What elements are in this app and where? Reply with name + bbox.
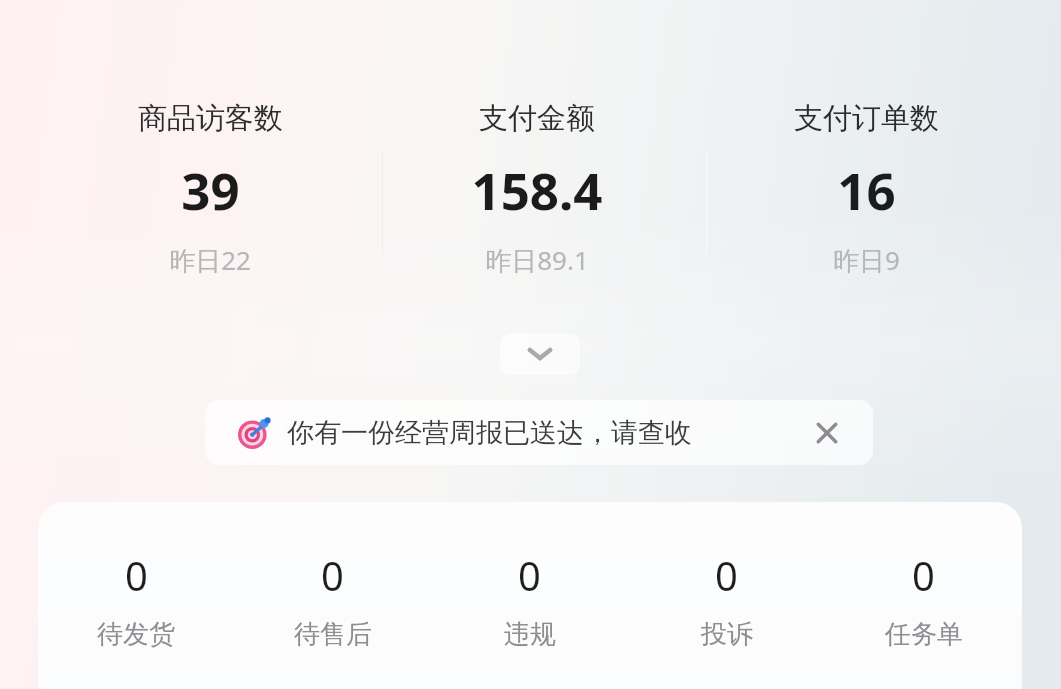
staticText: 你有一份经营周报已送达，请查收 xyxy=(287,416,692,450)
button[interactable]: 支付金额 xyxy=(387,100,687,278)
button[interactable]: 关闭 xyxy=(807,413,847,453)
button[interactable]: 你有一份经营周报已送达，请查收 xyxy=(205,400,873,465)
button[interactable]: 0 xyxy=(234,542,431,657)
staticText: 0 xyxy=(715,548,738,602)
staticText: 16 xyxy=(837,155,896,224)
staticText: 0 xyxy=(321,548,344,602)
staticText: 0 xyxy=(125,548,148,602)
button[interactable]: 0 xyxy=(628,542,825,657)
staticText: 昨日22 xyxy=(169,242,251,278)
staticText: 0 xyxy=(912,548,935,602)
staticText: 158.4 xyxy=(471,155,603,224)
staticText: 0 xyxy=(518,548,541,602)
staticText: 违规 xyxy=(504,618,556,651)
staticText: 待发货 xyxy=(97,618,175,651)
staticText: 昨日9 xyxy=(833,242,900,278)
staticText: 商品访客数 xyxy=(138,100,283,137)
button[interactable]: 0 xyxy=(38,542,234,657)
staticText: 待售后 xyxy=(294,618,372,651)
staticText: 39 xyxy=(181,155,240,224)
button[interactable]: 展开 xyxy=(500,333,580,375)
button[interactable]: 0 xyxy=(825,542,1022,657)
staticText: 任务单 xyxy=(885,618,963,651)
button[interactable]: 0 xyxy=(431,542,628,657)
button[interactable]: 支付订单数 xyxy=(716,100,1016,278)
staticText: 支付订单数 xyxy=(794,100,939,137)
staticText: 昨日89.1 xyxy=(485,242,589,278)
staticText: 投诉 xyxy=(701,618,753,651)
button[interactable]: 商品访客数 xyxy=(60,100,360,278)
staticText: 支付金额 xyxy=(479,100,595,137)
